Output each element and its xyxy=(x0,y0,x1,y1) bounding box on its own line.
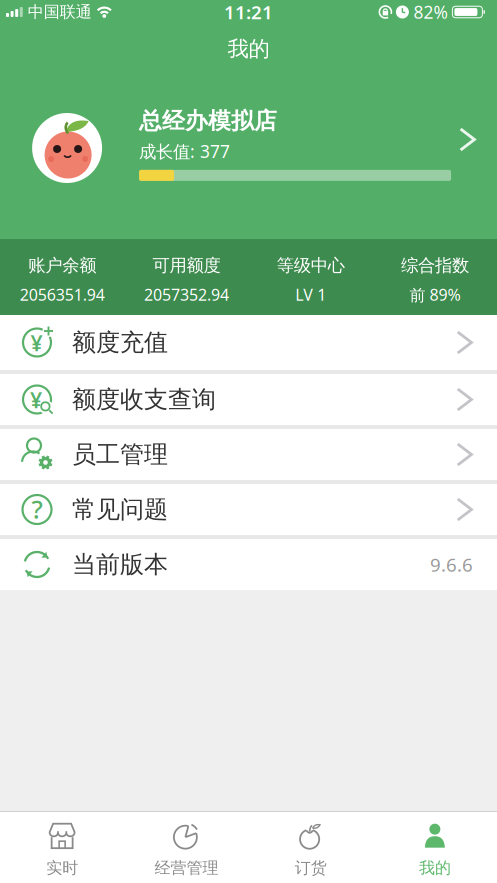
button[interactable]: 综合指数 xyxy=(373,239,497,315)
button[interactable]: ¥ xyxy=(0,374,497,425)
button[interactable]: 账户余额 xyxy=(0,239,124,315)
button[interactable]: 经营管理 xyxy=(124,812,248,883)
staticText: 额度收支查询 xyxy=(72,385,216,414)
staticText: 订货 xyxy=(295,858,327,878)
button[interactable]: 订货 xyxy=(248,812,373,883)
button[interactable]: 总经办模拟店 xyxy=(0,107,497,183)
staticText: LV 1 xyxy=(295,284,326,305)
staticText: 2056351.94 xyxy=(20,284,105,305)
staticText: 实时 xyxy=(46,858,78,878)
button[interactable]: 我的 xyxy=(373,812,497,883)
staticText: 82% xyxy=(413,0,447,23)
staticText: 11:21 xyxy=(224,0,273,24)
button[interactable]: ? xyxy=(0,484,497,535)
button[interactable]: 当前版本 xyxy=(0,539,497,590)
staticText: 常见问题 xyxy=(72,495,168,524)
staticText: 成长值: 377 xyxy=(139,140,230,163)
button[interactable]: 实时 xyxy=(0,812,124,883)
staticText: 2057352.94 xyxy=(144,284,229,305)
staticText: 经营管理 xyxy=(154,858,218,878)
staticText: 等级中心 xyxy=(277,255,345,276)
staticText: ¥ xyxy=(30,329,42,357)
staticText: 额度充值 xyxy=(72,328,168,357)
staticText: 我的 xyxy=(227,36,269,62)
button[interactable]: 可用额度 xyxy=(124,239,248,315)
staticText: 前 89% xyxy=(409,284,460,305)
staticText: 可用额度 xyxy=(152,255,220,276)
staticText: 总经办模拟店 xyxy=(139,107,277,135)
button[interactable]: ¥ xyxy=(0,315,497,370)
button[interactable]: 员工管理 xyxy=(0,429,497,480)
staticText: 我的 xyxy=(419,858,451,878)
staticText: 中国联通 xyxy=(28,2,92,22)
button[interactable]: 等级中心 xyxy=(248,239,373,315)
staticText: ? xyxy=(31,492,42,526)
staticText: ¥ xyxy=(30,386,42,414)
staticText: 员工管理 xyxy=(72,440,168,469)
staticText: 当前版本 xyxy=(72,550,168,579)
staticText: 综合指数 xyxy=(401,255,469,276)
staticText: 9.6.6 xyxy=(430,552,473,577)
staticText: 账户余额 xyxy=(28,255,96,276)
